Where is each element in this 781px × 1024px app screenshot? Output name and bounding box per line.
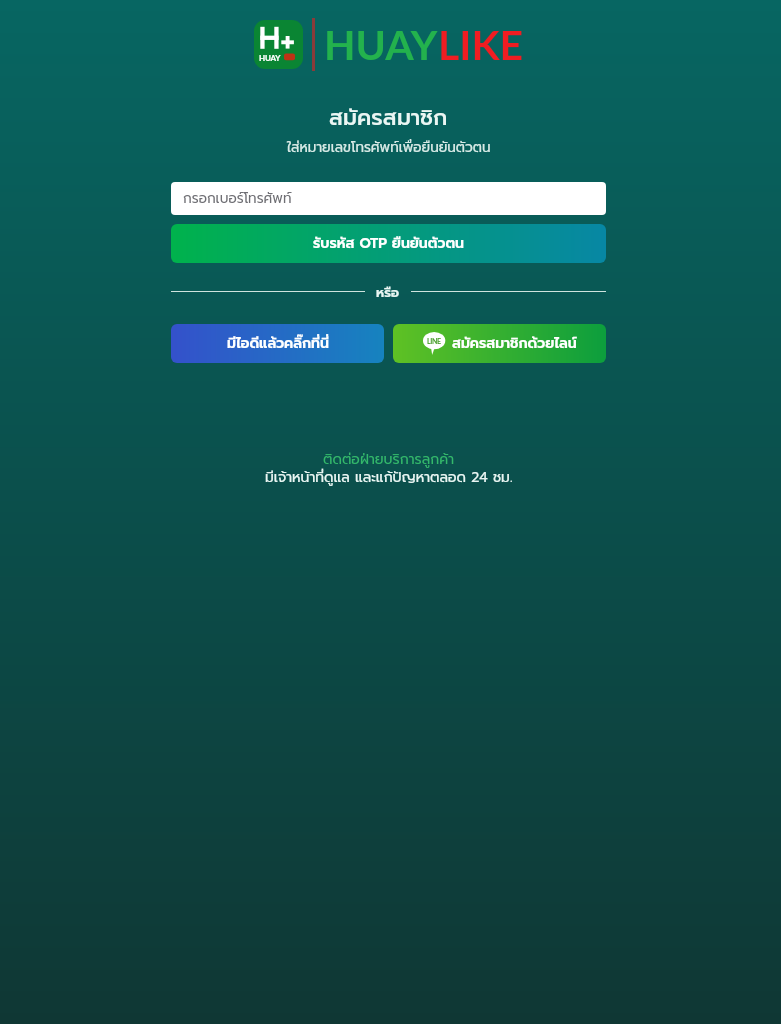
- staticText: สมัครสมาชิก: [329, 101, 448, 134]
- staticText: HUAY: [324, 20, 438, 69]
- staticText: กรอกเบอร์โทรศัพท์: [183, 188, 292, 209]
- button[interactable]: กรอกเบอร์โทรศัพท์: [171, 182, 606, 215]
- staticText: LIKE: [438, 20, 524, 69]
- button[interactable]: รับรหัส OTP ยืนยันตัวตน: [171, 224, 606, 263]
- staticText: HUAY: [259, 53, 281, 63]
- button[interactable]: มีไอดีแล้วคลิ๊กที่นี่: [171, 324, 384, 363]
- button[interactable]: LINE: [393, 324, 606, 363]
- staticText: ใส่หมายเลขโทรศัพท์เพื่อยืนยันตัวตน: [287, 137, 491, 158]
- staticText: หรือ: [376, 283, 400, 299]
- staticText: มีเจ้าหน้าที่ดูแล และแก้ปัญหาตลอด 24 ชม.: [265, 467, 513, 488]
- staticText: สมัครสมาชิกด้วยไลน์: [452, 333, 577, 354]
- button[interactable]: ติดต่อฝ่ายบริการลูกค้า: [323, 449, 455, 470]
- staticText: มีไอดีแล้วคลิ๊กที่นี่: [227, 333, 329, 354]
- other: HUAYLIKE logo: [254, 20, 303, 69]
- staticText: LINE: [427, 337, 441, 345]
- staticText: รับรหัส OTP ยืนยันตัวตน: [313, 233, 464, 254]
